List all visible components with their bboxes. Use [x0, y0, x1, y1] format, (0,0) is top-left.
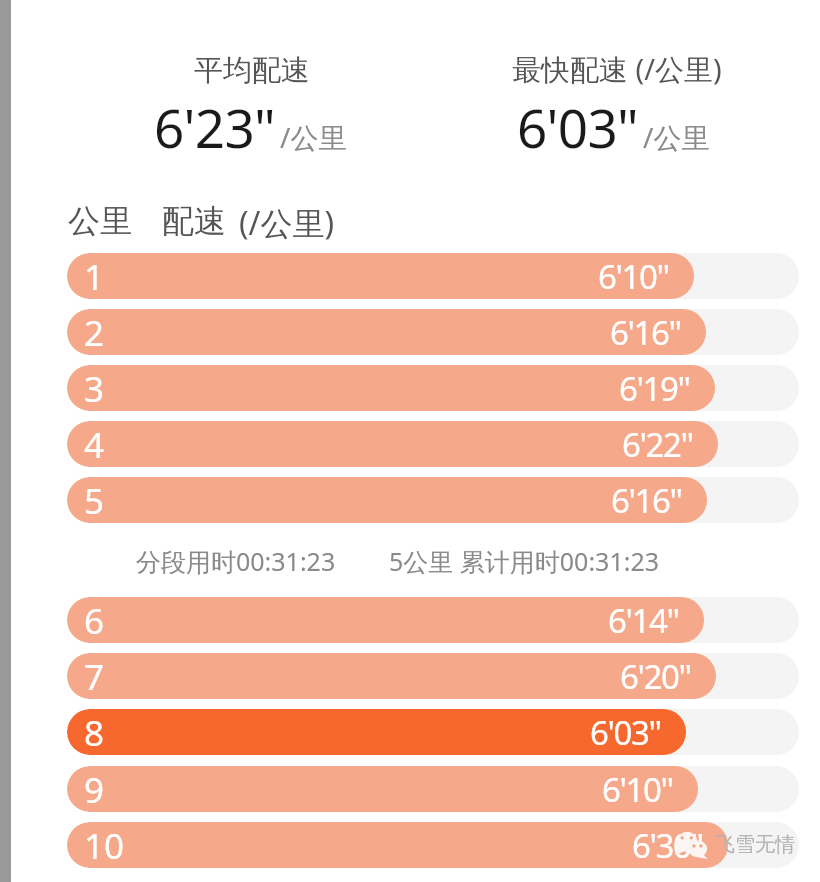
button[interactable]: 1	[67, 253, 799, 299]
staticText: 7	[84, 653, 105, 699]
staticText: 6'19"	[619, 366, 690, 411]
staticText: 1	[84, 253, 105, 299]
staticText: 6'03"	[517, 91, 638, 163]
staticText: 6'10"	[598, 254, 669, 299]
staticText: 3	[84, 365, 105, 411]
staticText: 配速	[162, 201, 226, 241]
staticText: /公里	[280, 118, 347, 156]
button[interactable]: 5	[67, 477, 799, 523]
staticText: 6'03"	[590, 710, 661, 755]
staticText: 6'16"	[611, 478, 682, 523]
staticText: 4	[84, 421, 105, 467]
button[interactable]: 8	[67, 709, 799, 755]
staticText: 8	[84, 709, 105, 755]
button[interactable]: 4	[67, 421, 799, 467]
button[interactable]: 10	[67, 822, 799, 868]
staticText: 2	[84, 309, 105, 355]
button[interactable]: 9	[67, 766, 799, 812]
staticText: 6'10"	[602, 767, 673, 812]
staticText: 飞雪无情	[715, 832, 795, 857]
staticText: 平均配速	[194, 52, 310, 89]
staticText: 6'16"	[610, 310, 681, 355]
staticText: 6'22"	[622, 422, 693, 467]
other: WeChat	[675, 830, 708, 859]
button[interactable]: 2	[67, 309, 799, 355]
staticText: 5	[84, 477, 105, 523]
button[interactable]: 3	[67, 365, 799, 411]
staticText: 公里	[68, 201, 132, 241]
button[interactable]: 7	[67, 653, 799, 699]
staticText: 9	[84, 766, 105, 812]
staticText: 6'20"	[620, 654, 691, 699]
staticText: 6'14"	[608, 598, 679, 643]
staticText: (/公里)	[239, 201, 335, 245]
staticText: 分段用时00:31:23	[136, 544, 336, 578]
staticText: /公里	[643, 118, 710, 156]
staticText: 6	[84, 597, 105, 643]
button[interactable]: 6	[67, 597, 799, 643]
staticText: 最快配速 (/公里)	[512, 49, 722, 89]
staticText: 5公里 累计用时00:31:23	[389, 544, 660, 578]
staticText: 6'30"	[632, 823, 703, 868]
staticText: 6'23"	[154, 91, 275, 163]
staticText: 10	[84, 822, 125, 868]
